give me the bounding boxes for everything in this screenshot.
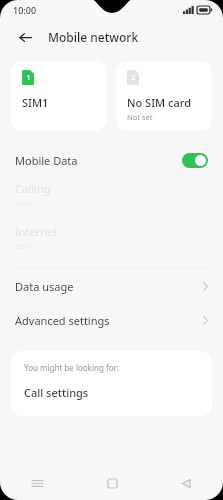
button[interactable]: Advanced settings (0, 303, 223, 337)
staticText: Calling (15, 181, 51, 196)
button[interactable]: Recents (0, 466, 75, 500)
staticText: No SIM card (127, 95, 191, 110)
button[interactable]: Home (75, 466, 149, 500)
staticText: Call settings (24, 385, 89, 400)
staticText: Mobile Data (15, 153, 78, 168)
staticText: You might be looking for: (24, 362, 119, 373)
button[interactable]: 1 (11, 61, 107, 131)
staticText: Advanced settings (15, 313, 110, 328)
button[interactable]: 2 (116, 61, 212, 131)
staticText: SIM1 (22, 95, 49, 110)
button[interactable]: Mobile Data toggle (182, 153, 208, 168)
staticText: SIM1 (15, 198, 33, 208)
staticText: 2 (131, 73, 136, 83)
staticText: 10:00 (13, 4, 37, 16)
staticText: Mobile network (48, 29, 139, 45)
staticText: Not set (127, 112, 153, 122)
staticText: SIM1 (15, 241, 33, 251)
staticText: Data usage (15, 279, 74, 294)
button[interactable]: Data usage (0, 269, 223, 303)
button[interactable]: Mobile Data (0, 143, 223, 177)
button[interactable]: Back (149, 466, 223, 500)
button[interactable]: Call settings (24, 385, 89, 400)
staticText: 1 (26, 73, 31, 83)
staticText: Internet (15, 224, 58, 239)
button[interactable]: Back (13, 25, 37, 49)
